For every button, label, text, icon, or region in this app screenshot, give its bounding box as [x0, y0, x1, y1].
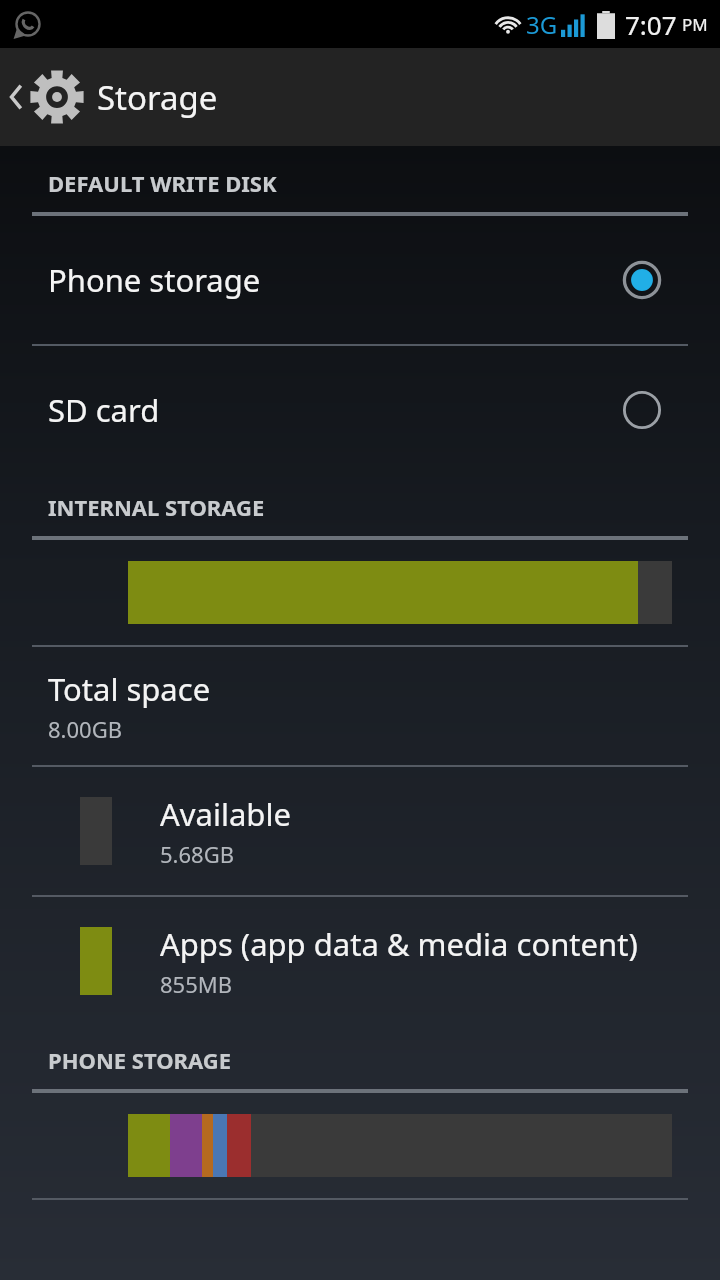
- staticText: PM: [682, 13, 708, 36]
- button[interactable]: Phone storage: [0, 216, 720, 344]
- staticText: Total space: [48, 668, 211, 710]
- staticText: Apps (app data & media content): [160, 923, 638, 965]
- button[interactable]: Back: [0, 60, 94, 134]
- staticText: PHONE STORAGE: [48, 1045, 232, 1075]
- button[interactable]: Available: [0, 767, 720, 895]
- staticText: Phone storage: [48, 259, 620, 301]
- staticText: 8.00GB: [48, 714, 122, 744]
- button[interactable]: Apps (app data & media content): [0, 897, 720, 1025]
- staticText: 5.68GB: [160, 839, 234, 869]
- staticText: INTERNAL STORAGE: [48, 492, 265, 522]
- button[interactable]: Total space: [0, 647, 720, 765]
- staticText: Storage: [97, 75, 218, 120]
- staticText: Available: [160, 793, 291, 835]
- staticText: 3G: [526, 8, 558, 41]
- staticText: 7:07: [625, 7, 677, 42]
- staticText: 855MB: [160, 969, 233, 999]
- staticText: DEFAULT WRITE DISK: [48, 168, 277, 198]
- button[interactable]: SD card: [0, 346, 720, 474]
- staticText: SD card: [48, 389, 620, 431]
